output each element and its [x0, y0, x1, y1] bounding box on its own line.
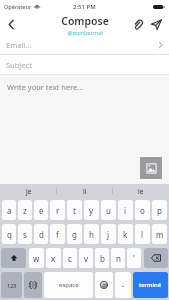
staticText: b [100, 253, 105, 264]
button[interactable]: x [46, 248, 61, 268]
staticText: je [26, 187, 32, 196]
button[interactable]: w [29, 248, 44, 268]
button[interactable]: Backspace [144, 248, 168, 268]
button[interactable]: g [67, 224, 82, 244]
button[interactable]: Write your text here... [0, 75, 169, 184]
staticText: Compose [61, 14, 109, 28]
staticText: 123 [7, 282, 17, 289]
button[interactable]: s [18, 224, 32, 244]
button[interactable]: Back [0, 13, 22, 36]
button[interactable]: Send [147, 13, 166, 36]
staticText: Subject [6, 60, 32, 70]
button[interactable]: Subject [0, 55, 169, 74]
staticText: k [123, 229, 128, 240]
staticText: 2:51 PM [73, 3, 96, 11]
staticText: y [89, 205, 94, 216]
staticText: x [51, 253, 56, 264]
button[interactable]: i [118, 200, 133, 220]
button[interactable]: f [50, 224, 65, 244]
button[interactable]: v [79, 248, 93, 268]
button[interactable]: Shift [1, 248, 26, 268]
staticText: c [68, 253, 72, 264]
button[interactable]: t [67, 200, 82, 220]
staticText: h [89, 229, 94, 240]
staticText: p [157, 205, 162, 216]
button[interactable]: c [63, 248, 77, 268]
button[interactable]: l [135, 224, 150, 244]
button[interactable]: o [135, 200, 150, 220]
staticText: z [23, 205, 27, 216]
staticText: d [39, 229, 44, 240]
staticText: u [106, 205, 111, 216]
button[interactable]: q [2, 224, 16, 244]
staticText: l [141, 229, 144, 240]
button[interactable]: Attached image [140, 157, 162, 179]
staticText: . [122, 280, 124, 290]
staticText: m [156, 229, 164, 240]
button[interactable]: z [18, 200, 32, 220]
staticText: n [116, 253, 121, 264]
button[interactable]: 123 [1, 272, 22, 298]
button[interactable]: e [34, 200, 48, 220]
staticText: r [56, 205, 60, 216]
button[interactable]: j [101, 224, 116, 244]
button[interactable]: . [115, 272, 131, 298]
staticText: j [107, 229, 110, 240]
staticText: w [33, 253, 40, 264]
staticText: e [39, 205, 44, 216]
button[interactable]: Attach file [128, 13, 147, 36]
staticText: il [83, 187, 87, 196]
staticText: terminé [139, 281, 162, 289]
button[interactable]: ' [127, 248, 141, 268]
staticText: f [56, 229, 59, 240]
staticText: le [138, 187, 144, 196]
staticText: a [7, 205, 12, 216]
staticText: q [7, 229, 12, 240]
button[interactable]: r [50, 200, 65, 220]
staticText: t [73, 205, 76, 216]
button[interactable]: a [2, 200, 16, 220]
button[interactable]: terminé [133, 272, 168, 298]
button[interactable]: espace [44, 272, 93, 298]
button[interactable]: le [113, 184, 169, 198]
button[interactable]: k [118, 224, 133, 244]
button[interactable]: Email... [0, 36, 169, 54]
button[interactable]: h [84, 224, 99, 244]
staticText: espace [59, 281, 79, 289]
staticText: Email... [6, 40, 32, 50]
staticText: Opérateur [4, 3, 32, 10]
staticText: @monjournal [67, 29, 103, 36]
button[interactable]: n [111, 248, 125, 268]
button[interactable]: d [34, 224, 48, 244]
button[interactable]: p [152, 200, 167, 220]
button[interactable]: y [84, 200, 99, 220]
button[interactable]: b [95, 248, 109, 268]
button[interactable]: il [57, 184, 113, 198]
button[interactable]: m [152, 224, 167, 244]
staticText: g [72, 229, 77, 240]
staticText: v [84, 253, 89, 264]
button[interactable]: je [0, 184, 57, 198]
staticText: s [23, 229, 27, 240]
staticText: Write your text here... [7, 82, 84, 92]
staticText: o [140, 205, 145, 216]
button[interactable] [95, 272, 113, 298]
staticText: i [124, 205, 127, 216]
button[interactable]: Change keyboard [24, 272, 42, 298]
button[interactable]: u [101, 200, 116, 220]
staticText: ' [133, 253, 135, 264]
